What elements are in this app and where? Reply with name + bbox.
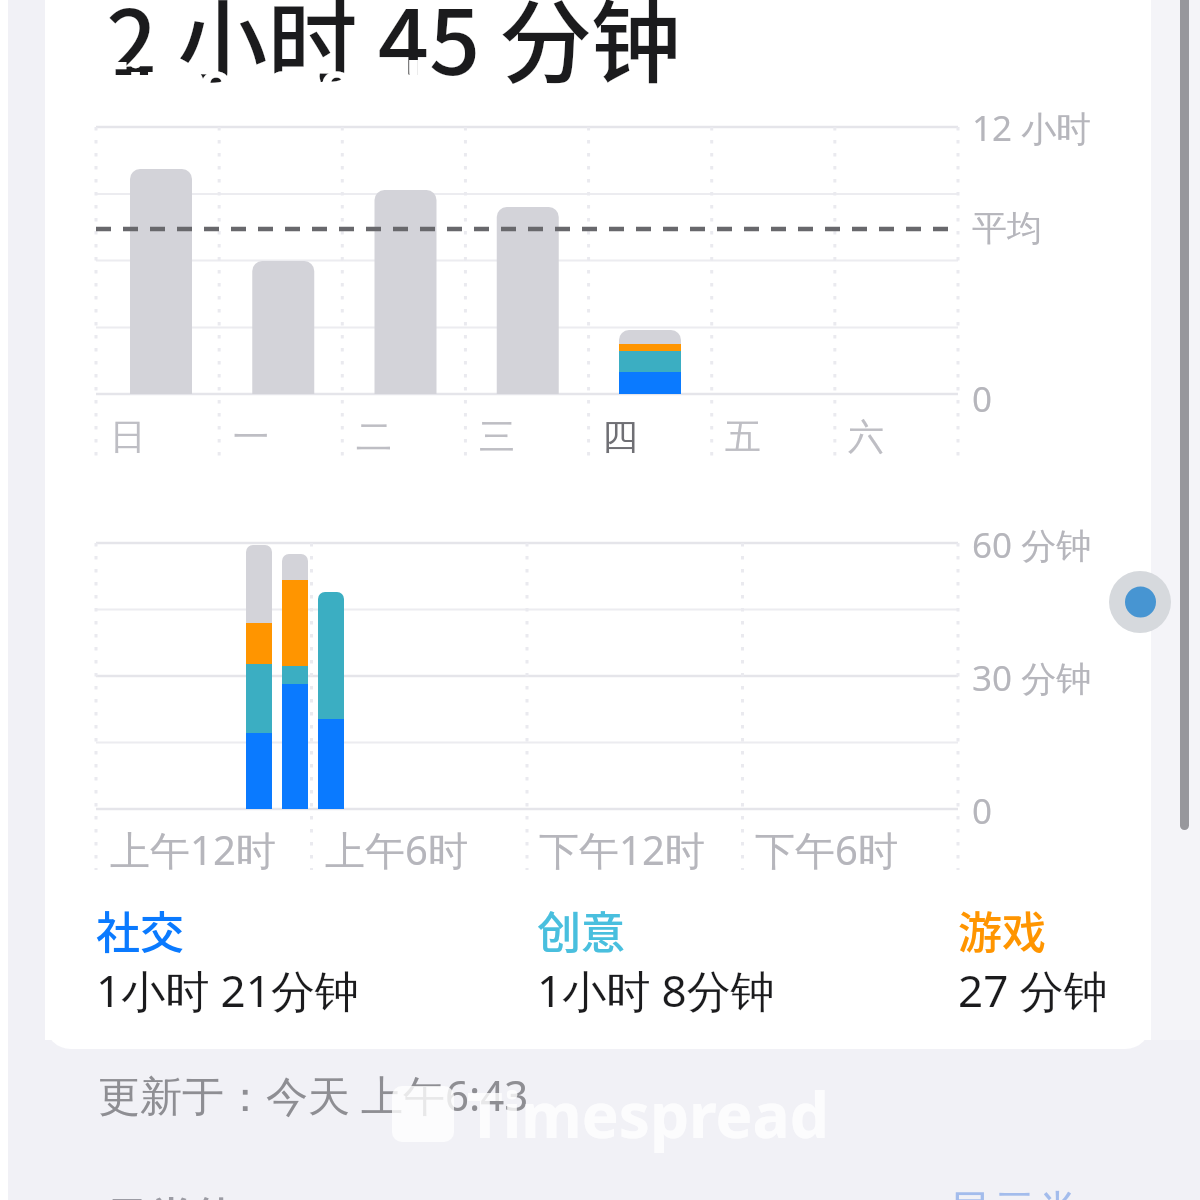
staticText: 0 xyxy=(972,375,993,423)
button[interactable]: 创意 xyxy=(537,898,927,1023)
staticText: 日 xyxy=(110,414,146,459)
staticText: 游戏 xyxy=(958,898,1046,962)
staticText: 下午6时 xyxy=(755,822,898,877)
staticText: 社交 xyxy=(96,898,184,962)
staticText: 更新于：今天 上午6:43 xyxy=(98,1066,529,1123)
button[interactable]: 游戏 xyxy=(958,898,1138,1023)
staticText: 二 xyxy=(356,414,392,459)
staticText: 显示类别 xyxy=(948,1185,1098,1200)
staticText: 60 分钟 xyxy=(972,521,1092,569)
staticText: 最常使用 xyxy=(105,1184,281,1200)
staticText: Timespread xyxy=(467,1072,829,1156)
staticText: 三 xyxy=(479,414,515,459)
staticText: Timespread xyxy=(95,42,422,118)
staticText: 上午6时 xyxy=(325,822,468,877)
staticText: 下午12时 xyxy=(539,822,705,877)
staticText: 1小时 8分钟 xyxy=(537,960,775,1020)
button[interactable]: 显示类别 xyxy=(948,1185,1098,1200)
staticText: 27 分钟 xyxy=(958,960,1108,1020)
staticText: 五 xyxy=(725,414,761,459)
staticText: 2 小时 45 分钟 xyxy=(106,0,681,101)
staticText: 1小时 21分钟 xyxy=(96,960,359,1020)
staticText: 一 xyxy=(233,414,269,459)
staticText: 30 分钟 xyxy=(972,654,1092,702)
staticText: 创意 xyxy=(537,898,625,962)
button[interactable]: 社交 xyxy=(96,898,496,1023)
staticText: 12 小时 xyxy=(972,104,1092,152)
staticText: 六 xyxy=(848,414,884,459)
staticText: 平均 xyxy=(972,206,1042,250)
staticText: 上午12时 xyxy=(110,822,276,877)
staticText: 0 xyxy=(972,787,993,835)
staticText: 四 xyxy=(602,414,638,459)
